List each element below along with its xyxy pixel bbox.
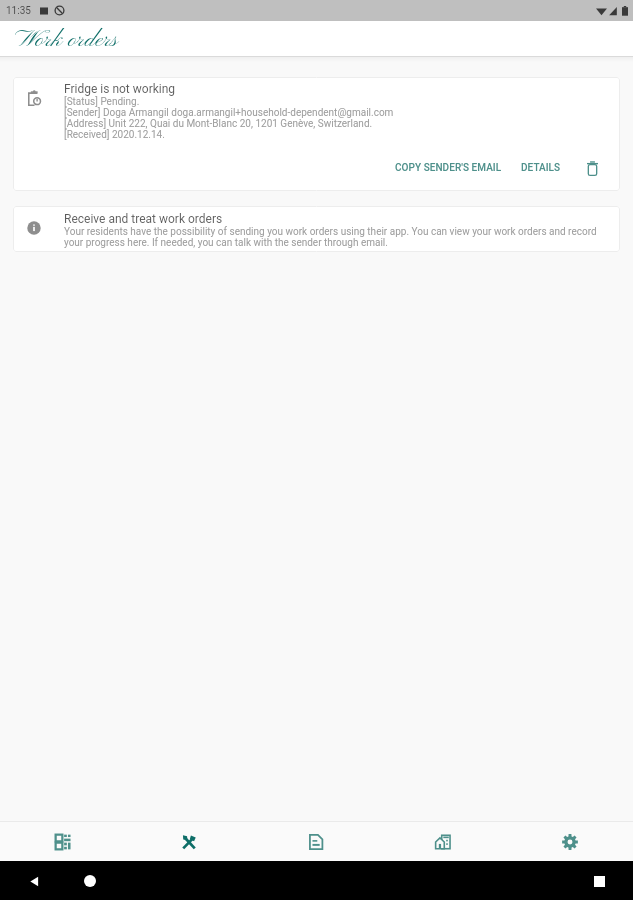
button[interactable]: Properties (379, 822, 506, 861)
staticText: Your residents have the possibility of s… (64, 226, 607, 248)
staticText: COPY SENDER'S EMAIL (395, 162, 502, 174)
staticText: Receive and treat work orders (64, 212, 223, 226)
button[interactable]: Dashboard (0, 822, 126, 861)
staticText: [Sender] Doga Armangil doga.armangil+hou… (64, 107, 394, 118)
staticText: Work orders (15, 25, 118, 55)
button[interactable]: Home (78, 869, 102, 893)
staticText: [Status] Pending. (64, 96, 140, 107)
button[interactable]: Work orders (126, 822, 252, 861)
button[interactable]: Documents (252, 822, 379, 861)
staticText: [Received] 2020.12.14. (64, 129, 165, 140)
staticText: Fridge is not working (64, 82, 176, 96)
staticText: [Address] Unit 222, Quai du Mont-Blanc 2… (64, 118, 373, 129)
staticText: 11:35 (6, 5, 31, 17)
button[interactable]: COPY SENDER'S EMAIL (387, 157, 510, 179)
staticText: DETAILS (521, 162, 561, 174)
button[interactable]: DETAILS (513, 157, 569, 179)
button[interactable]: Recents (587, 869, 611, 893)
button[interactable]: Settings (506, 822, 633, 861)
button[interactable]: Back (22, 869, 46, 893)
button[interactable]: Delete work order (581, 157, 603, 179)
